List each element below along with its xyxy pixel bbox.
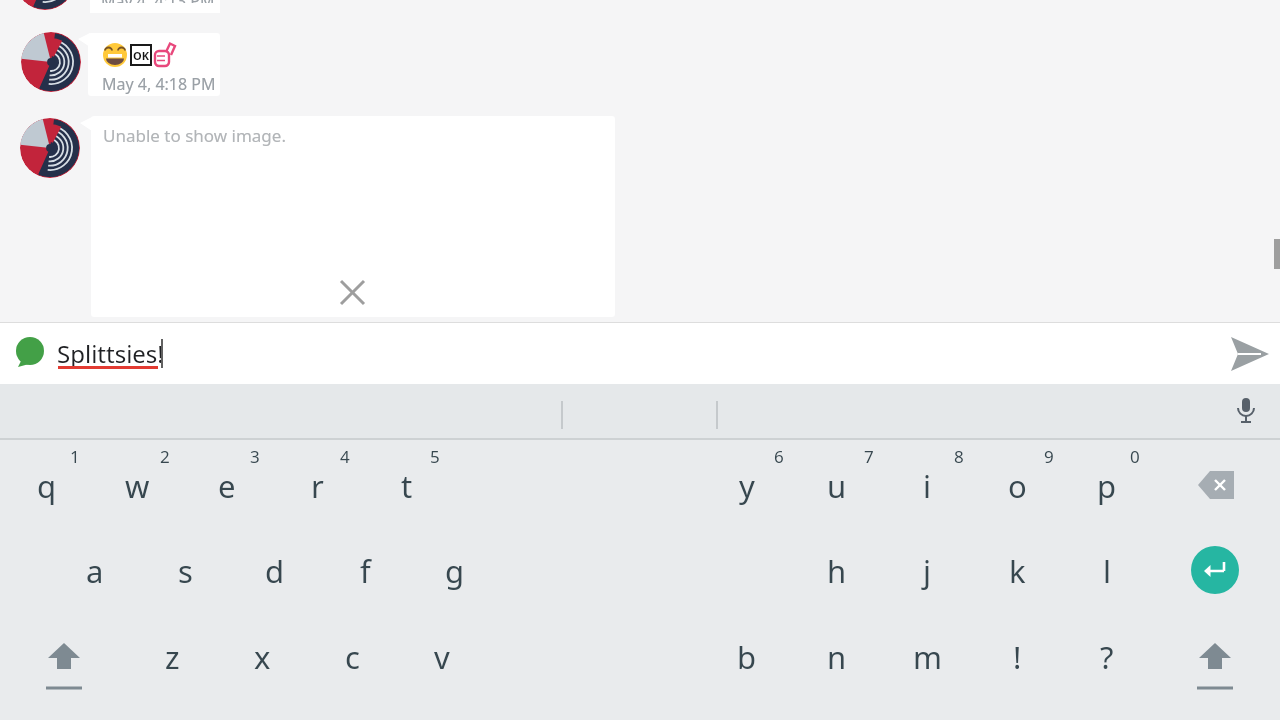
staticText: Splittsies! (57, 337, 164, 370)
staticText: ! (1013, 636, 1022, 678)
staticText: s (178, 550, 193, 592)
staticText: t (401, 465, 413, 507)
staticText: May 4, 4:13 PM (101, 0, 215, 3)
button[interactable] (1191, 546, 1239, 594)
staticText: 3 (250, 445, 260, 468)
button[interactable]: OK (88, 33, 220, 96)
button[interactable] (1197, 643, 1233, 691)
button[interactable]: f (333, 543, 397, 599)
staticText: h (827, 550, 847, 592)
staticText: e (218, 465, 236, 507)
button[interactable]: q (15, 458, 79, 514)
staticText: Unable to show image. (103, 124, 286, 147)
button[interactable]: i (895, 458, 959, 514)
staticText: 5 (430, 445, 440, 468)
button[interactable]: l (1075, 543, 1139, 599)
button[interactable] (1198, 471, 1238, 499)
button[interactable]: ! (985, 629, 1049, 685)
staticText: l (1103, 550, 1111, 592)
button[interactable]: z (140, 629, 204, 685)
staticText: May 4, 4:18 PM (102, 73, 216, 95)
staticText: p (1097, 465, 1117, 507)
button[interactable]: p (1075, 458, 1139, 514)
staticText: w (125, 465, 150, 507)
button[interactable]: w (105, 458, 169, 514)
button[interactable]: h (805, 543, 869, 599)
staticText: y (739, 465, 755, 507)
button[interactable]: n (805, 629, 869, 685)
staticText: m (913, 636, 942, 678)
staticText: j (923, 550, 931, 592)
button[interactable] (1235, 398, 1257, 425)
button[interactable]: d (243, 543, 307, 599)
staticText: b (737, 636, 757, 678)
button[interactable] (16, 337, 44, 369)
button[interactable]: b (715, 629, 779, 685)
button[interactable]: v (410, 629, 474, 685)
button[interactable]: g (423, 543, 487, 599)
staticText: i (923, 465, 931, 507)
staticText: o (1008, 465, 1027, 507)
button[interactable]: m (895, 629, 959, 685)
staticText: 8 (954, 445, 964, 468)
button[interactable]: Unable to show image. (91, 116, 615, 317)
staticText: u (827, 465, 847, 507)
staticText: v (434, 636, 450, 678)
button[interactable]: ? (1075, 629, 1139, 685)
button[interactable]: a (63, 543, 127, 599)
staticText: f (360, 550, 371, 592)
staticText: 0 (1130, 445, 1140, 468)
button[interactable]: r (285, 458, 349, 514)
button[interactable]: e (195, 458, 259, 514)
staticText: c (345, 636, 360, 678)
staticText: 7 (864, 445, 874, 468)
staticText: 1 (70, 445, 80, 468)
button[interactable]: u (805, 458, 869, 514)
button[interactable] (46, 643, 82, 691)
staticText: 2 (160, 445, 170, 468)
staticText: r (311, 465, 324, 507)
staticText: 4 (340, 445, 350, 468)
staticText: ? (1100, 636, 1114, 678)
staticText: x (254, 636, 271, 678)
button[interactable]: x (230, 629, 294, 685)
staticText: q (37, 465, 57, 507)
staticText: n (827, 636, 847, 678)
staticText: k (1009, 550, 1026, 592)
button[interactable]: s (153, 543, 217, 599)
staticText: OK (133, 48, 150, 63)
button[interactable] (1231, 337, 1269, 371)
staticText: g (445, 550, 465, 592)
button[interactable]: k (985, 543, 1049, 599)
button[interactable]: c (320, 629, 384, 685)
staticText: d (265, 550, 285, 592)
staticText: a (86, 550, 104, 592)
staticText: z (165, 636, 180, 678)
button[interactable]: j (895, 543, 959, 599)
button[interactable]: o (985, 458, 1049, 514)
staticText: 9 (1044, 445, 1054, 468)
staticText: 6 (774, 445, 784, 468)
button[interactable]: y (715, 458, 779, 514)
button[interactable]: t (375, 458, 439, 514)
